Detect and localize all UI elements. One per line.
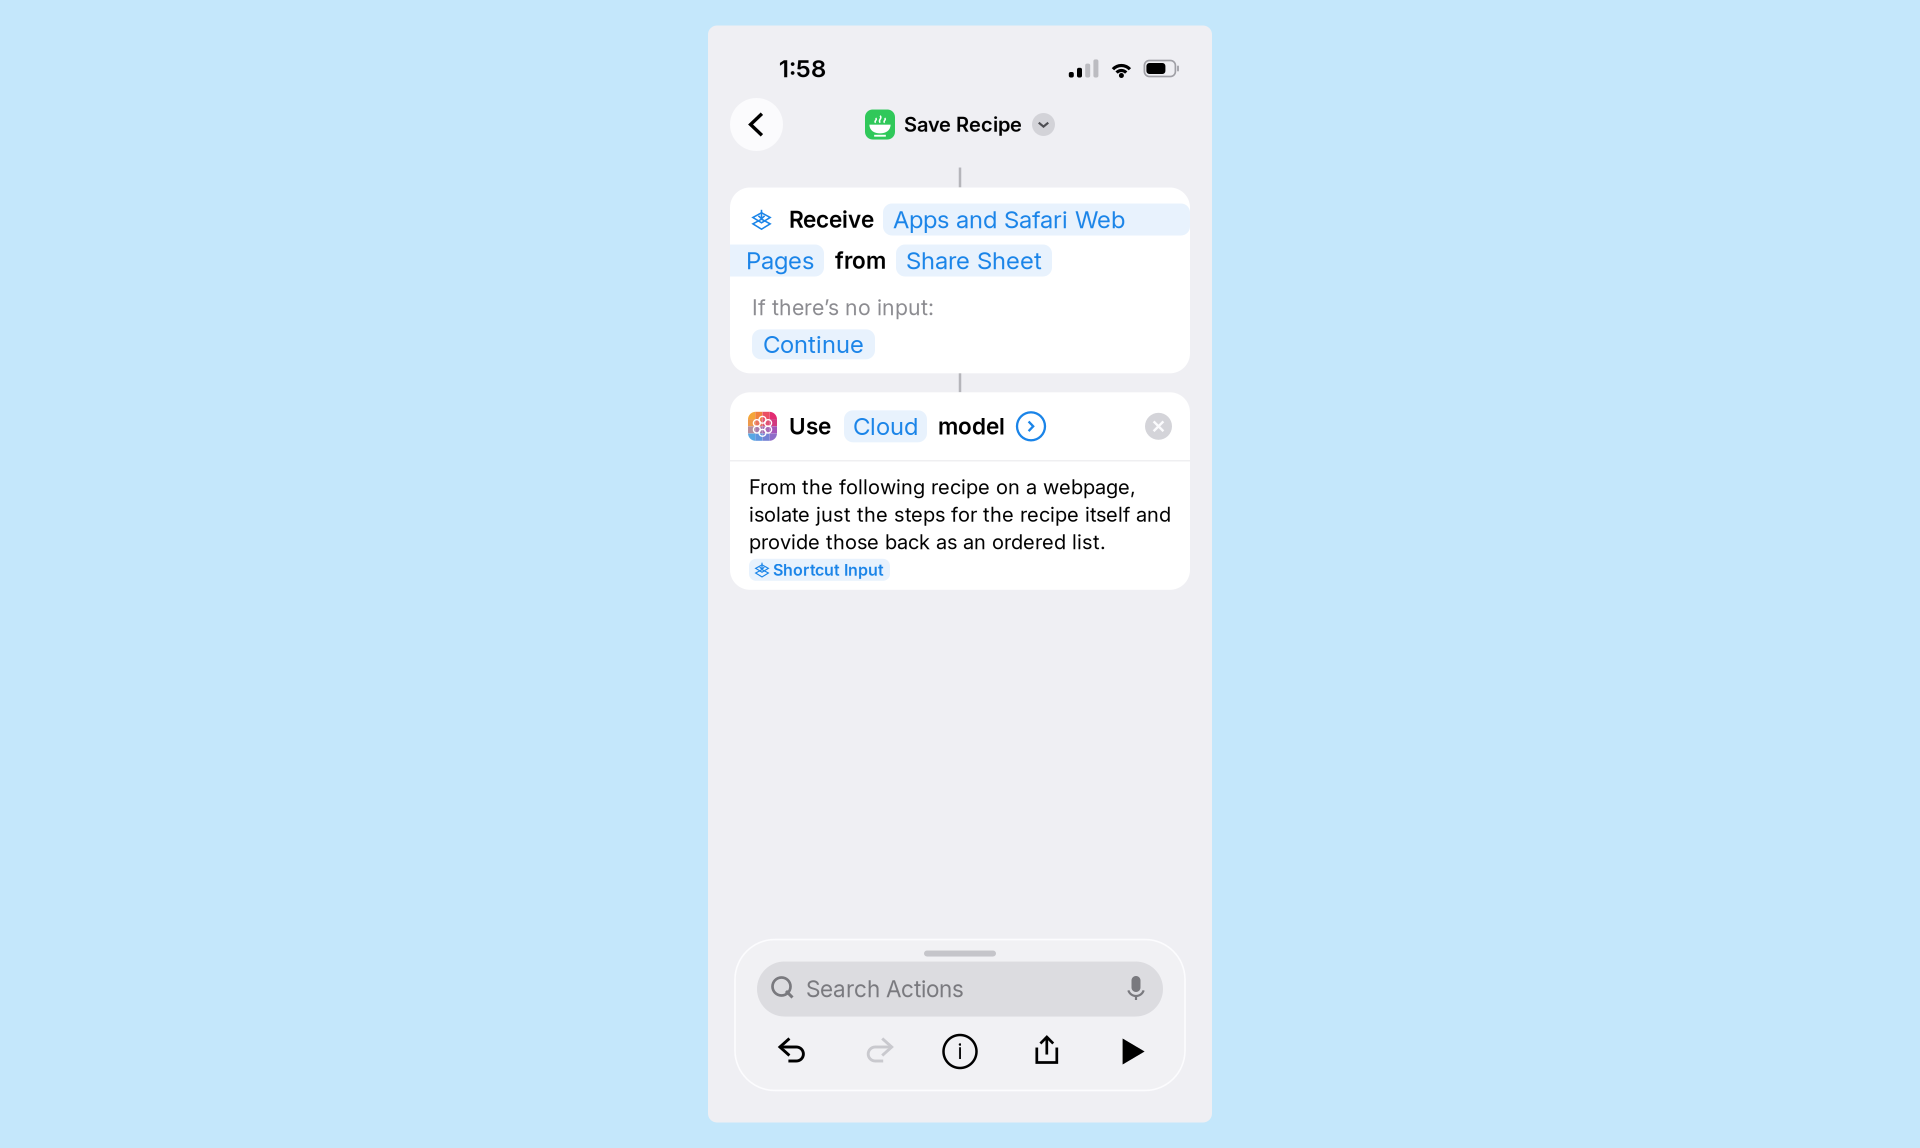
button[interactable]: Undo <box>753 1029 836 1073</box>
staticText: Share Sheet <box>906 246 1042 275</box>
staticText: model <box>938 413 1005 440</box>
staticText: Search Actions <box>806 975 964 1003</box>
staticText: Receive <box>789 206 874 233</box>
staticText: i <box>957 1039 962 1064</box>
button[interactable]: Remove action <box>1145 413 1172 440</box>
staticText: Apps and Safari Web <box>893 205 1125 234</box>
staticText: From the following recipe on a webpage, <box>749 475 1136 499</box>
staticText: Save Recipe <box>904 112 1022 137</box>
staticText: 1:58 <box>779 54 826 83</box>
button[interactable]: Back <box>730 98 783 151</box>
button[interactable]: Share <box>1001 1029 1084 1073</box>
staticText: provide those back as an ordered list. <box>749 530 1106 554</box>
staticText: Cloud <box>853 412 918 441</box>
button[interactable]: Run <box>1084 1029 1167 1073</box>
button[interactable]: Details <box>919 1029 1001 1073</box>
button[interactable]: Save Recipe <box>865 109 1055 139</box>
staticText: from <box>835 247 886 274</box>
staticText: Pages <box>746 246 814 275</box>
staticText: Shortcut Input <box>773 560 884 579</box>
staticText: Use <box>789 413 831 440</box>
staticText: isolate just the steps for the recipe it… <box>749 502 1171 527</box>
staticText: If there’s no input: <box>752 294 934 320</box>
button[interactable]: Redo <box>836 1029 919 1073</box>
staticText: Continue <box>763 330 864 359</box>
